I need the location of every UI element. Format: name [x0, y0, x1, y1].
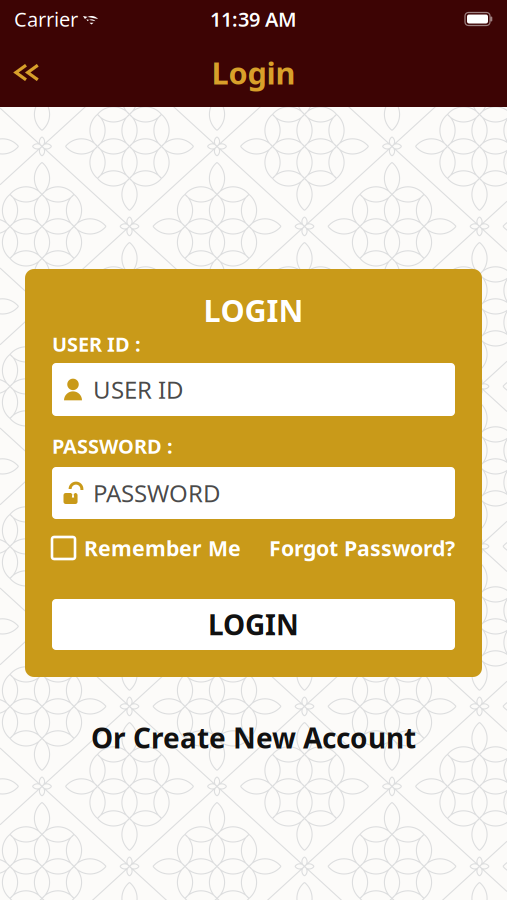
staticText: 11:39 AM [210, 6, 297, 32]
button[interactable]: Back [0, 49, 52, 95]
staticText: USER ID [93, 374, 184, 405]
staticText: Remember Me [84, 534, 241, 562]
button[interactable]: Or Create New Account [91, 719, 416, 756]
staticText: Or Create New Account [91, 719, 416, 756]
button[interactable]: LOGIN [52, 599, 455, 650]
button[interactable]: Forgot Password? [269, 534, 455, 562]
staticText: PASSWORD : [52, 433, 173, 459]
staticText: Carrier [14, 6, 78, 32]
staticText: LOGIN [208, 606, 299, 643]
staticText: LOGIN [203, 290, 303, 330]
staticText: Login [211, 52, 295, 93]
staticText: USER ID : [52, 331, 141, 357]
staticText: Forgot Password? [269, 534, 455, 562]
button[interactable]: Remember Me [52, 534, 241, 562]
staticText: PASSWORD [93, 477, 221, 509]
